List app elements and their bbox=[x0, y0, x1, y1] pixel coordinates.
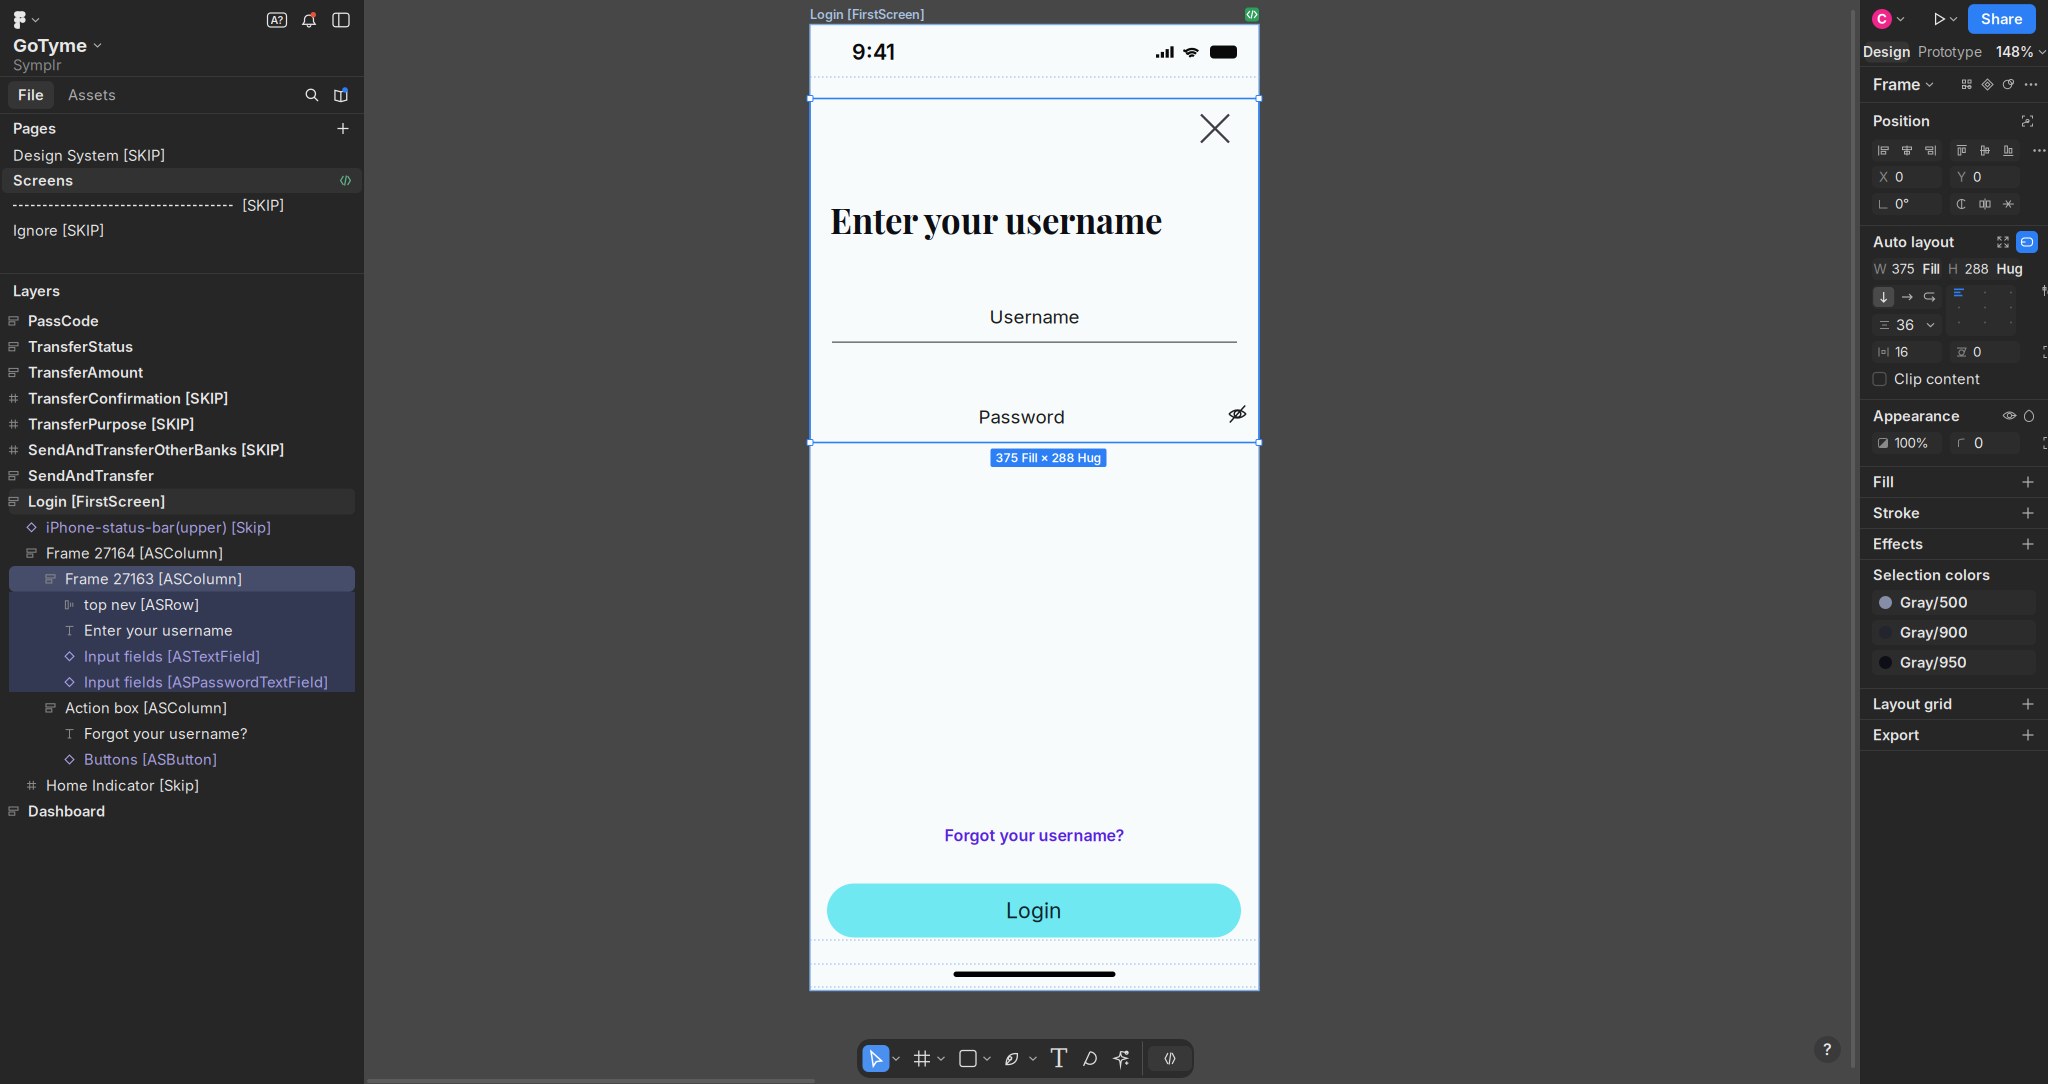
button[interactable]: Assets bbox=[58, 81, 126, 109]
staticText: Fill bbox=[1922, 261, 1939, 277]
button[interactable]: Add bbox=[2019, 473, 2037, 491]
button[interactable]: Show password bbox=[1228, 404, 1247, 423]
button[interactable]: Shape tool bbox=[955, 1045, 981, 1071]
button[interactable]: Close bbox=[1201, 114, 1229, 142]
button[interactable]: Create component bbox=[1977, 74, 1998, 95]
button[interactable]: Align bbox=[1919, 139, 1942, 161]
button[interactable]: File bbox=[8, 81, 54, 109]
button[interactable]: Visibility bbox=[1999, 406, 2020, 425]
button[interactable]: Input fields [ASTextField] bbox=[0, 643, 364, 669]
button[interactable]: Individual corners bbox=[2044, 437, 2048, 448]
button[interactable]: Input fields [ASPasswordTextField] bbox=[0, 669, 364, 695]
button[interactable]: Present bbox=[1935, 13, 1957, 25]
staticText: 0 bbox=[1895, 169, 1903, 185]
staticText: GoTyme bbox=[13, 34, 87, 57]
button[interactable]: Login bbox=[827, 883, 1241, 937]
button[interactable]: Design bbox=[1865, 41, 1909, 62]
button[interactable]: Move tool options bbox=[888, 1049, 904, 1067]
button[interactable]: Add bbox=[2019, 695, 2037, 713]
button[interactable]: Auto layout settings bbox=[2016, 231, 2038, 253]
button[interactable]: Search bbox=[300, 83, 324, 107]
button[interactable]: Align bbox=[1895, 139, 1919, 161]
button[interactable]: Home Indicator [Skip] bbox=[0, 772, 364, 798]
button[interactable]: Align bbox=[1997, 139, 2020, 161]
button[interactable]: Components bbox=[1957, 74, 1977, 94]
staticText: PassCode bbox=[28, 312, 99, 330]
button[interactable]: Move tool bbox=[862, 1045, 889, 1072]
button[interactable]: Transform bbox=[1973, 193, 1997, 215]
button[interactable]: Transform bbox=[1997, 193, 2020, 215]
button[interactable]: Gray/950 bbox=[1872, 650, 2036, 675]
button[interactable]: More bbox=[2020, 75, 2042, 93]
button[interactable]: More align bbox=[2033, 145, 2046, 155]
button[interactable]: Dev mode bbox=[1148, 1046, 1192, 1071]
button[interactable]: Prototype bbox=[1912, 38, 1988, 65]
button[interactable]: Comment bbox=[1077, 1045, 1103, 1071]
button[interactable]: Account bbox=[1872, 9, 1904, 29]
button[interactable]: Align bbox=[1973, 139, 1997, 161]
button[interactable]: Styles bbox=[1998, 74, 2020, 95]
button[interactable]: Buttons [ASButton] bbox=[0, 747, 364, 772]
button[interactable]: TransferConfirmation [SKIP] bbox=[0, 385, 364, 411]
button[interactable]: Share bbox=[1968, 4, 2036, 34]
button[interactable]: Pen tool options bbox=[1025, 1049, 1041, 1067]
button[interactable]: Figma menu bbox=[14, 5, 52, 35]
button[interactable]: top nev [ASRow] bbox=[0, 592, 364, 618]
button[interactable]: Constraints bbox=[2018, 111, 2037, 130]
button[interactable]: Frame tool bbox=[909, 1045, 935, 1071]
staticText: top nev [ASRow] bbox=[84, 596, 199, 613]
button[interactable]: Help bbox=[1814, 1036, 1841, 1063]
button[interactable]: Direction bbox=[1895, 285, 1919, 309]
button[interactable]: Libraries bbox=[328, 82, 354, 108]
button[interactable]: TransferPurpose [SKIP] bbox=[0, 411, 364, 437]
button[interactable]: Zoom level bbox=[1996, 43, 2046, 60]
button[interactable]: Text tool bbox=[1046, 1045, 1072, 1071]
button[interactable]: Gray/900 bbox=[1872, 620, 2036, 645]
button[interactable]: Direction bbox=[1872, 285, 1895, 309]
button[interactable]: Individual padding bbox=[2044, 346, 2048, 357]
button[interactable]: Gray/500 bbox=[1872, 590, 2036, 615]
button[interactable]: Font help bbox=[264, 7, 290, 33]
button[interactable]: Notifications bbox=[295, 7, 323, 33]
button[interactable]: Add page bbox=[333, 118, 353, 138]
button[interactable]: Pen tool bbox=[999, 1045, 1025, 1071]
button[interactable]: Dashboard bbox=[0, 798, 364, 824]
button[interactable]: Login [FirstScreen] bbox=[0, 489, 364, 514]
button[interactable]: Align bbox=[1872, 139, 1895, 161]
button[interactable]: Actions bbox=[1109, 1045, 1135, 1071]
button[interactable]: TransferStatus bbox=[0, 334, 364, 360]
staticText: 375 bbox=[1891, 261, 1914, 277]
button[interactable]: Ignore [SKIP] bbox=[2, 218, 362, 243]
button[interactable]: Add bbox=[2019, 504, 2037, 522]
button[interactable]: Toggle panel bbox=[328, 7, 354, 33]
button[interactable]: Design System [SKIP] bbox=[2, 143, 362, 168]
button[interactable]: iPhone-status-bar(upper) [Skip] bbox=[0, 514, 364, 540]
staticText: Forgot your username? bbox=[944, 826, 1124, 845]
button[interactable]: SendAndTransferOtherBanks [SKIP] bbox=[0, 437, 364, 463]
button[interactable]: Add bbox=[2019, 535, 2037, 553]
button[interactable]: Frame 27163 [ASColumn] bbox=[0, 566, 364, 592]
button[interactable]: PassCode bbox=[0, 308, 364, 334]
button[interactable]: Transform bbox=[1950, 193, 1973, 215]
button[interactable]: [SKIP] bbox=[2, 193, 362, 218]
button[interactable]: Align bbox=[1950, 139, 1973, 161]
button[interactable]: Shape tool options bbox=[979, 1049, 995, 1067]
button[interactable]: Advanced layout bbox=[2044, 285, 2048, 296]
button[interactable]: Frame tool options bbox=[933, 1049, 949, 1067]
staticText: 100% bbox=[1894, 435, 1928, 451]
button[interactable]: Forgot your username? bbox=[810, 824, 1259, 846]
button[interactable]: Screens bbox=[2, 168, 362, 193]
button[interactable]: Add bbox=[2019, 726, 2037, 744]
button[interactable]: Blend mode bbox=[2020, 406, 2038, 426]
button[interactable]: Collapse bbox=[1994, 233, 2012, 251]
button[interactable]: TransferAmount bbox=[0, 360, 364, 385]
button[interactable]: Action box [ASColumn] bbox=[0, 695, 364, 721]
button[interactable]: Frame 27164 [ASColumn] bbox=[0, 540, 364, 566]
staticText: Design bbox=[1863, 43, 1911, 60]
button[interactable]: Enter your username bbox=[0, 618, 364, 643]
staticText: Enter your username bbox=[84, 622, 233, 639]
button[interactable]: SendAndTransfer bbox=[0, 463, 364, 489]
staticText: Action box [ASColumn] bbox=[65, 699, 227, 717]
button[interactable]: Forgot your username? bbox=[0, 721, 364, 747]
button[interactable]: Direction bbox=[1919, 285, 1942, 309]
